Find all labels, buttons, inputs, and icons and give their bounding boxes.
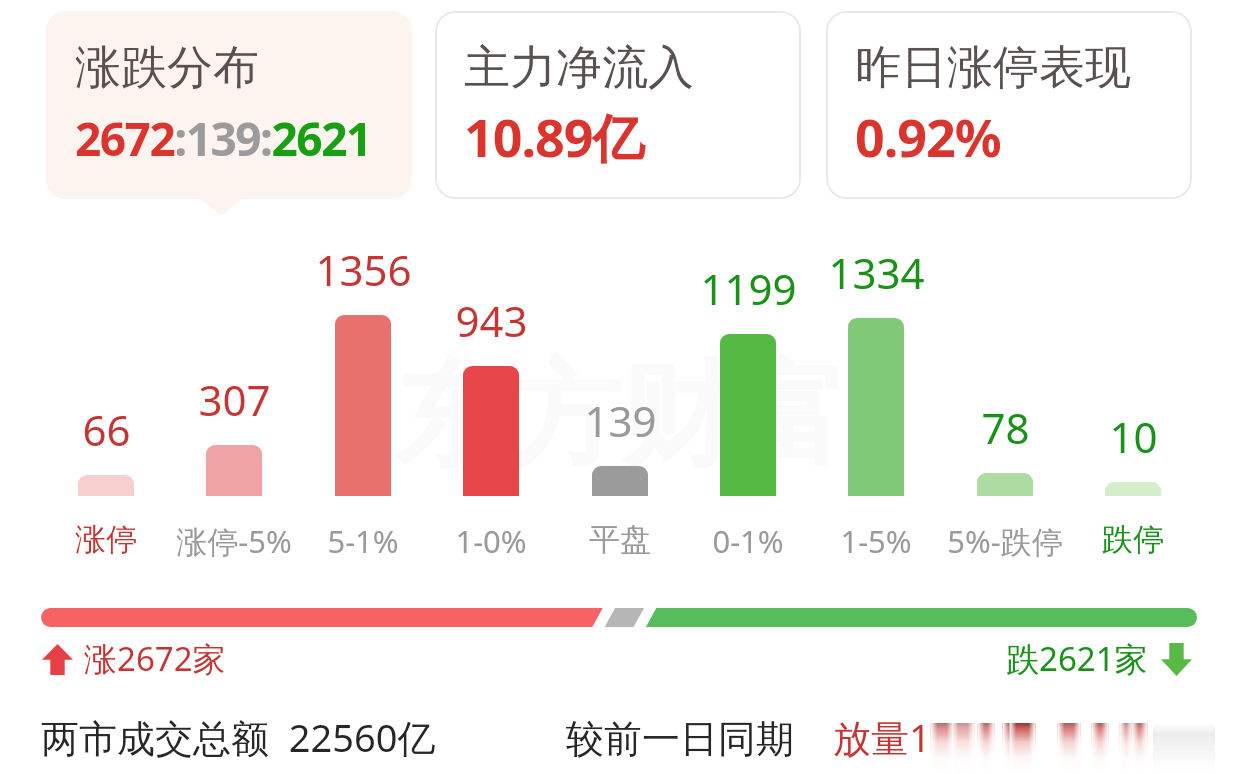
button[interactable]: 5%-跌停 78 <box>941 240 1069 560</box>
staticText: 跌2621家 <box>1006 636 1148 681</box>
staticText: 5-1% <box>327 520 399 562</box>
button[interactable]: 涨跌分布 <box>46 11 412 199</box>
staticText: 5%-跌停 <box>947 520 1063 562</box>
button[interactable]: 0-1% 1199 <box>684 240 812 560</box>
staticText: 两市成交总额 22560亿 <box>41 711 436 763</box>
staticText: 78 <box>981 399 1030 456</box>
button[interactable]: 昨日涨停表现 <box>826 11 1192 199</box>
staticText: 10 <box>1109 408 1158 465</box>
staticText: 东方财富 <box>395 345 847 487</box>
staticText: 1334 <box>828 244 925 301</box>
staticText: 0.92% <box>855 101 1001 172</box>
staticText: 139 <box>584 392 657 449</box>
staticText: 307 <box>198 371 271 428</box>
staticText: 昨日涨停表现 <box>855 39 1131 97</box>
staticText: 0-1% <box>712 520 784 562</box>
button[interactable]: 涨停-5% 307 <box>170 240 298 560</box>
staticText: 1356 <box>315 241 412 298</box>
staticText: 放量1 <box>833 711 931 763</box>
button[interactable]: 1-5% 1334 <box>812 240 940 560</box>
button[interactable]: 涨停 66 <box>42 240 170 560</box>
staticText: 平盘 <box>589 520 651 559</box>
staticText: 跌停 <box>1102 520 1164 559</box>
button[interactable]: 5-1% 1356 <box>299 240 427 560</box>
staticText: 1-0% <box>455 520 527 562</box>
staticText: 主力净流入 <box>464 39 694 97</box>
button[interactable]: 平盘 139 <box>556 240 684 560</box>
button[interactable]: 跌停 10 <box>1069 240 1197 560</box>
staticText: 2672:139:2621 <box>75 107 371 170</box>
staticText: 涨停-5% <box>176 520 292 562</box>
staticText: 较前一日同期 <box>566 715 794 763</box>
staticText: 涨停 <box>75 520 137 559</box>
button[interactable]: 主力净流入 <box>435 11 801 199</box>
staticText: 66 <box>82 401 131 458</box>
staticText: 1-5% <box>840 520 912 562</box>
staticText: 1199 <box>700 260 797 317</box>
button[interactable]: 1-0% 943 <box>427 240 555 560</box>
staticText: 涨跌分布 <box>75 39 259 97</box>
staticText: 10.89亿 <box>464 101 644 172</box>
staticText: 943 <box>455 292 528 349</box>
staticText: 涨2672家 <box>84 636 226 681</box>
